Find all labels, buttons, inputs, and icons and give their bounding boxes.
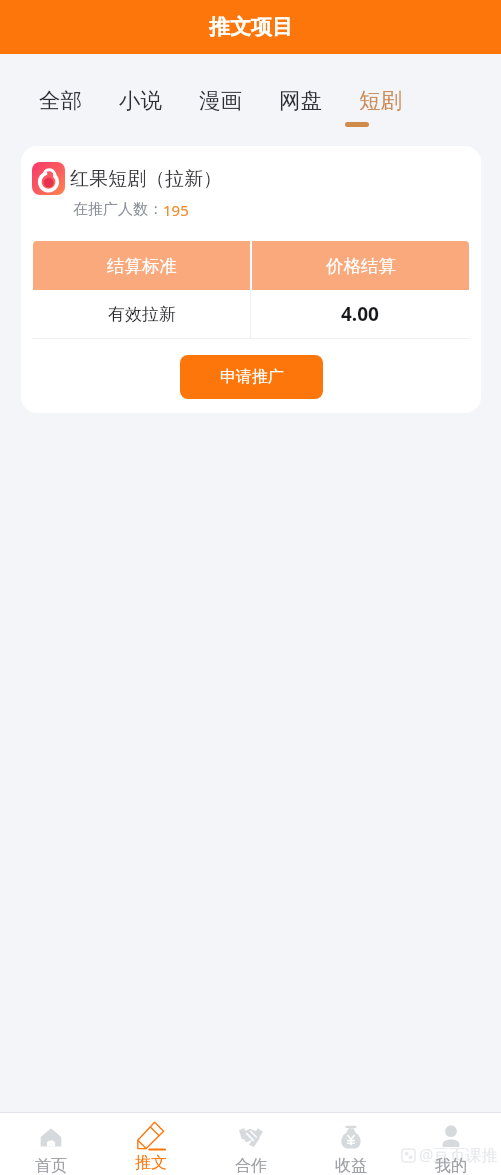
button[interactable]: 漫画 [180, 54, 260, 146]
staticText: 结算标准 [107, 255, 177, 277]
staticText: @豆页课推 [419, 1144, 498, 1166]
staticText: 推文 [135, 1153, 167, 1173]
staticText: 全部 [39, 87, 82, 114]
staticText: 合作 [235, 1156, 267, 1175]
button[interactable]: 全部 [20, 54, 100, 146]
staticText: 漫画 [199, 87, 242, 114]
button[interactable]: 推文 [101, 1113, 201, 1175]
staticText: 红果短剧（拉新） [70, 167, 222, 191]
staticText: 首页 [35, 1156, 67, 1175]
button[interactable]: 收益 [301, 1113, 401, 1175]
button[interactable]: 网盘 [260, 54, 340, 146]
staticText: 推文项目 [209, 14, 293, 40]
staticText: 申请推广 [220, 367, 284, 387]
staticText: 小说 [119, 87, 162, 114]
staticText: 有效拉新 [108, 304, 176, 325]
button[interactable]: 合作 [201, 1113, 301, 1175]
button[interactable]: 我的 [401, 1113, 501, 1175]
button[interactable]: 申请推广 [180, 355, 323, 399]
staticText: 在推广人数： [73, 200, 163, 219]
staticText: 短剧 [359, 87, 402, 114]
button[interactable]: 小说 [100, 54, 180, 146]
staticText: 4.00 [341, 301, 379, 327]
staticText: 价格结算 [326, 255, 396, 277]
staticText: 195 [163, 200, 189, 220]
button[interactable]: 短剧 [340, 54, 420, 146]
staticText: 收益 [335, 1156, 367, 1175]
staticText: 我的 [435, 1156, 467, 1175]
staticText: 网盘 [279, 87, 322, 114]
button[interactable]: 首页 [0, 1113, 101, 1175]
